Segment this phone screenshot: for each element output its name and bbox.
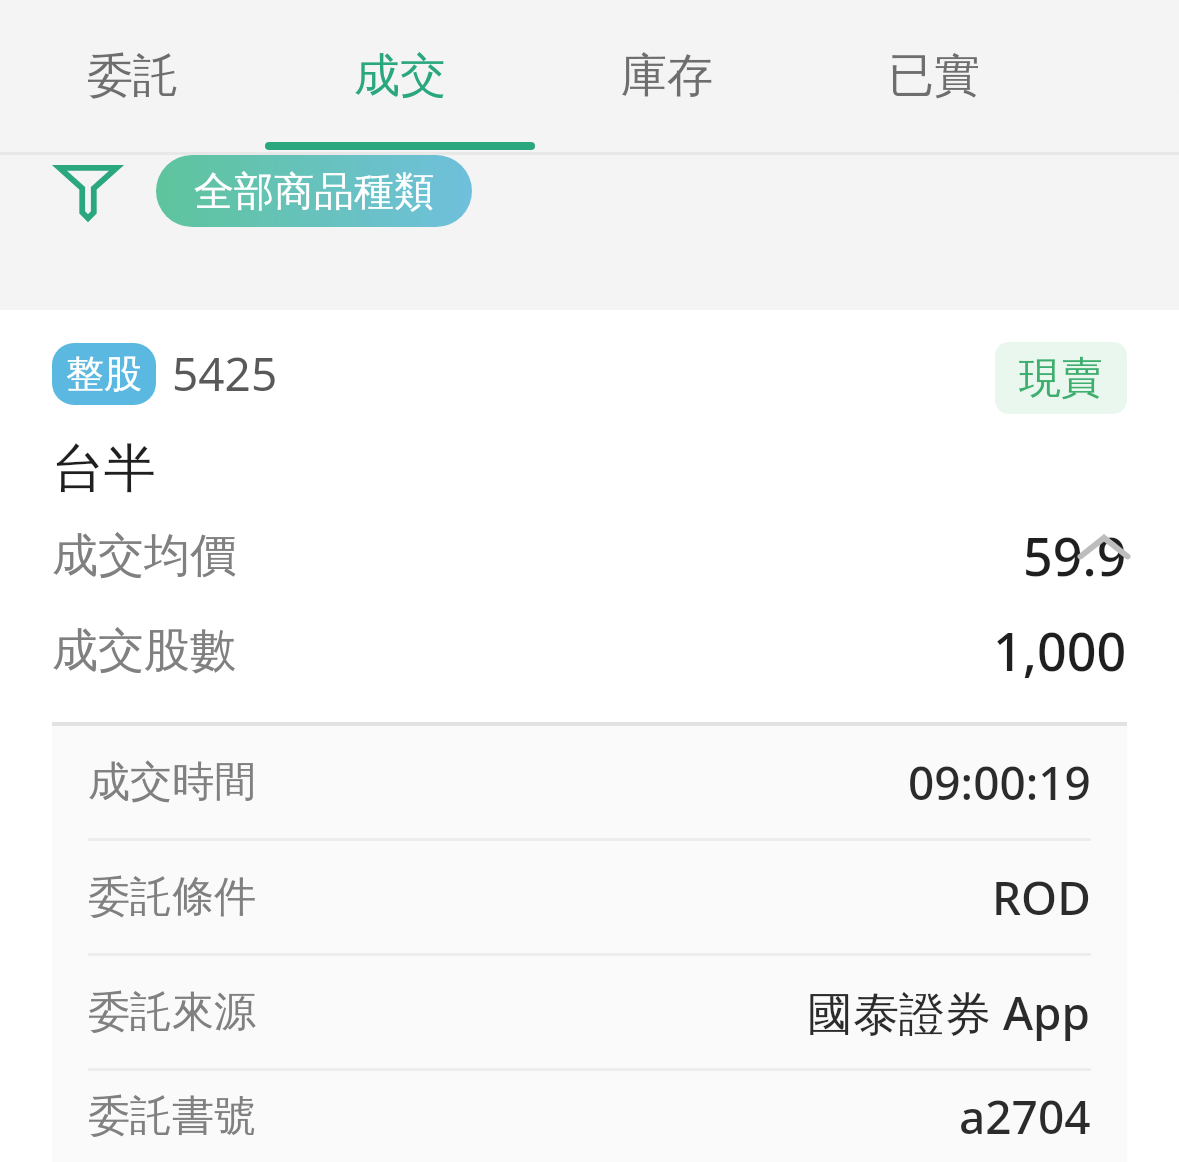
button[interactable]: Filter <box>52 155 124 227</box>
staticText: 1,000 <box>993 615 1127 686</box>
button[interactable]: 委託條件 <box>52 841 1127 953</box>
staticText: 成交股數 <box>52 622 236 680</box>
staticText: 委託 <box>87 47 179 105</box>
button[interactable]: 成交時間 <box>52 726 1127 838</box>
button[interactable]: Collapse details <box>1059 504 1149 594</box>
button[interactable]: 庫存 <box>557 0 777 152</box>
staticText: 現賣 <box>1019 352 1103 405</box>
staticText: 全部商品種類 <box>194 166 434 216</box>
button[interactable]: 委託書號 <box>52 1071 1127 1162</box>
staticText: 國泰證券 App <box>807 981 1091 1044</box>
staticText: 成交時間 <box>88 756 256 809</box>
staticText: 59.9 <box>1023 520 1127 591</box>
staticText: 庫存 <box>621 47 713 105</box>
button[interactable]: 整股 <box>0 310 1179 1162</box>
button[interactable]: 成交 <box>290 0 510 152</box>
staticText: 委託來源 <box>88 986 256 1039</box>
staticText: 委託條件 <box>88 871 256 924</box>
staticText: a2704 <box>959 1085 1091 1148</box>
staticText: 委託書號 <box>88 1090 256 1143</box>
staticText: 整股 <box>66 350 142 398</box>
staticText: 5425 <box>172 342 278 405</box>
button[interactable]: 已實 <box>824 0 1044 152</box>
button[interactable]: 全部商品種類 <box>156 155 472 227</box>
staticText: 成交 <box>354 47 446 105</box>
staticText: 成交均價 <box>52 527 236 585</box>
staticText: 09:00:19 <box>908 751 1091 814</box>
staticText: 台半 <box>52 436 156 502</box>
button[interactable]: 委託 <box>23 0 243 152</box>
staticText: ROD <box>992 866 1091 929</box>
staticText: 已實 <box>888 47 980 105</box>
button[interactable]: 委託來源 <box>52 956 1127 1068</box>
